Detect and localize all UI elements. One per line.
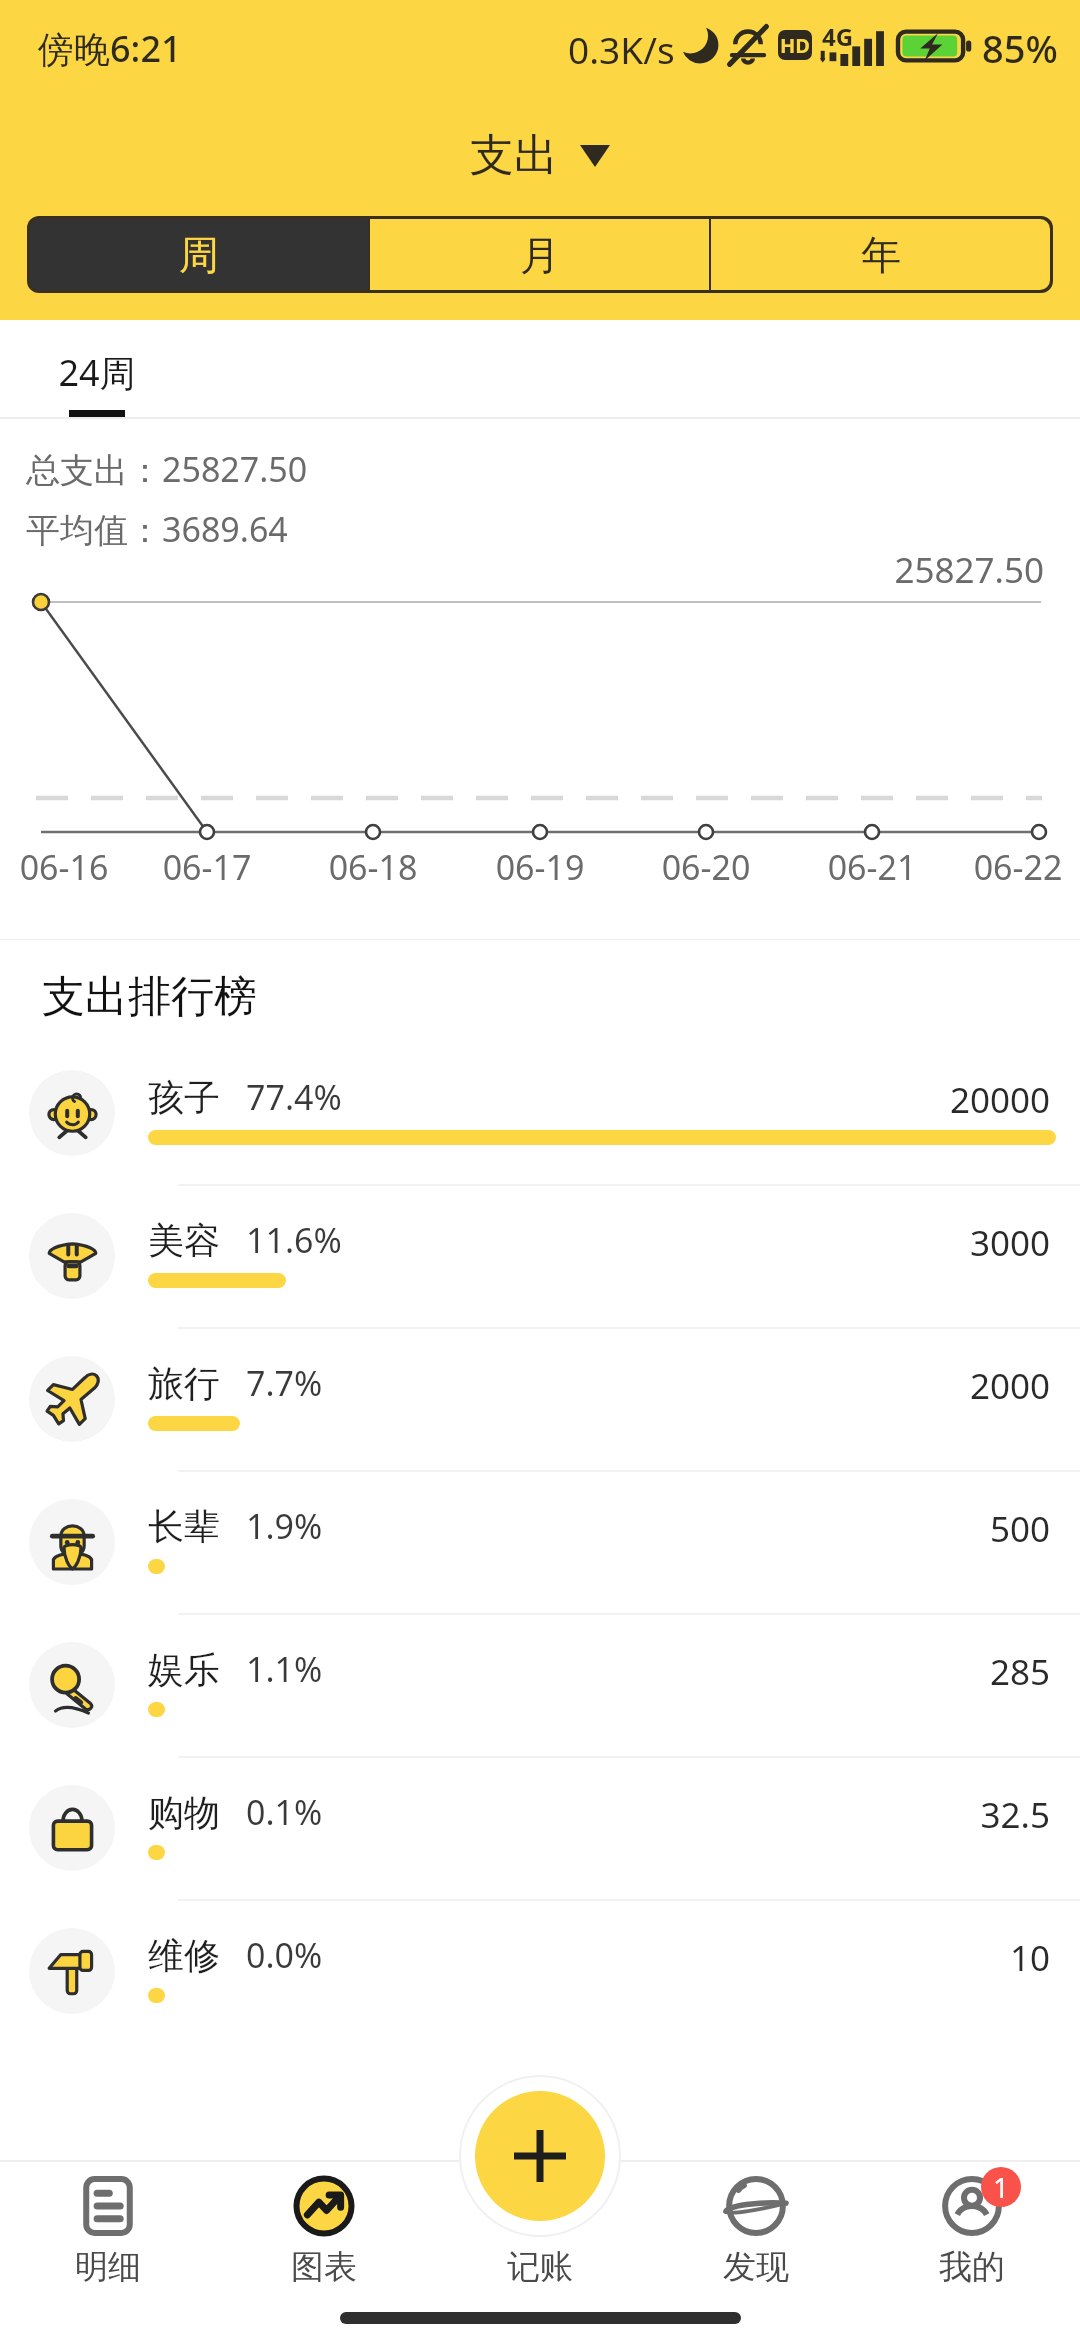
staticText: 06-18 xyxy=(313,844,433,890)
staticText: 0.3K/s xyxy=(568,24,675,74)
staticText: HD xyxy=(780,32,810,59)
staticText: 购物 xyxy=(148,1790,220,1835)
button[interactable]: 娱乐 xyxy=(0,1613,1080,1756)
staticText: 0.0% xyxy=(246,1932,323,1978)
staticText: 500 xyxy=(0,1505,1050,1553)
button[interactable]: 发现 xyxy=(648,2160,864,2310)
button[interactable]: 记账 xyxy=(432,2160,648,2310)
button[interactable]: 图表 xyxy=(216,2160,432,2310)
staticText: 2000 xyxy=(0,1362,1050,1410)
staticText: 我的 xyxy=(939,2246,1005,2288)
staticText: 32.5 xyxy=(0,1791,1050,1839)
staticText: 平均值：3689.64 xyxy=(26,506,288,552)
button[interactable]: 月 xyxy=(370,219,709,290)
staticText: 傍晚6:21 xyxy=(38,24,182,73)
staticText: 4G xyxy=(822,20,854,53)
staticText: 明细 xyxy=(75,2246,141,2288)
button[interactable]: 孩子 xyxy=(0,1041,1080,1184)
staticText: 3000 xyxy=(0,1219,1050,1267)
button[interactable]: 明细 xyxy=(0,2160,216,2310)
staticText: 长辈 xyxy=(148,1504,220,1549)
staticText: 06-20 xyxy=(646,844,766,890)
staticText: 旅行 xyxy=(148,1361,220,1406)
staticText: 年 xyxy=(861,230,901,280)
staticText: 月 xyxy=(520,230,560,280)
staticText: 25827.50 xyxy=(0,546,1044,594)
staticText: 0.1% xyxy=(246,1789,323,1835)
staticText: 支出排行榜 xyxy=(42,970,257,1024)
staticText: 支出 xyxy=(470,128,558,183)
button[interactable]: 记账 Add xyxy=(475,2091,605,2221)
staticText: 娱乐 xyxy=(148,1647,220,1692)
staticText: 总支出：25827.50 xyxy=(26,446,308,492)
staticText: 记账 xyxy=(507,2246,573,2288)
staticText: 1.9% xyxy=(246,1503,323,1549)
staticText: 10 xyxy=(0,1934,1050,1982)
button[interactable]: 1 xyxy=(864,2160,1080,2310)
staticText: 7.7% xyxy=(246,1360,323,1406)
button[interactable]: 维修 xyxy=(0,1899,1080,2042)
staticText: 美容 xyxy=(148,1218,220,1263)
staticText: 06-22 xyxy=(958,844,1078,890)
button[interactable]: 美容 xyxy=(0,1184,1080,1327)
staticText: 06-17 xyxy=(147,844,267,890)
button[interactable]: 长辈 xyxy=(0,1470,1080,1613)
staticText: 发现 xyxy=(723,2246,789,2288)
staticText: 11.6% xyxy=(246,1217,342,1263)
staticText: 24周 xyxy=(38,348,156,397)
staticText: 77.4% xyxy=(246,1074,342,1120)
button[interactable]: 支出 选择类型 xyxy=(458,122,622,189)
staticText: 维修 xyxy=(148,1933,220,1978)
staticText: 285 xyxy=(0,1648,1050,1696)
staticText: 06-19 xyxy=(480,844,600,890)
button[interactable]: 24周 xyxy=(38,320,156,419)
staticText: 孩子 xyxy=(148,1075,220,1120)
button[interactable]: 购物 xyxy=(0,1756,1080,1899)
staticText: 85% xyxy=(982,22,1058,74)
staticText: 1 xyxy=(993,2168,1010,2206)
staticText: 06-16 xyxy=(4,844,124,890)
button[interactable]: 周 xyxy=(30,219,368,290)
button[interactable]: 旅行 xyxy=(0,1327,1080,1470)
staticText: 06-21 xyxy=(812,844,932,890)
staticText: 周 xyxy=(179,230,219,280)
button[interactable]: 年 xyxy=(711,219,1050,290)
staticText: 20000 xyxy=(0,1076,1050,1124)
staticText: 1.1% xyxy=(246,1646,323,1692)
staticText: 图表 xyxy=(291,2246,357,2288)
